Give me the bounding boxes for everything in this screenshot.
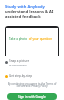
staticText: Snap a picture <box>9 59 30 63</box>
staticText: Sign in with Google <box>18 95 46 99</box>
staticText: assisted feedback <box>5 14 41 19</box>
staticText: understand lessons & AI <box>5 9 54 14</box>
staticText: of the problem <box>9 63 27 66</box>
staticText: Take a photo <box>9 37 28 41</box>
staticText: By continuing you agree to the Terms of … <box>7 82 57 88</box>
staticText: Get step-by-step <box>9 74 33 78</box>
staticText: Study with Anybody <box>5 4 45 9</box>
button[interactable]: Sign in with Google <box>7 93 57 100</box>
staticText: of your question <box>28 37 52 41</box>
